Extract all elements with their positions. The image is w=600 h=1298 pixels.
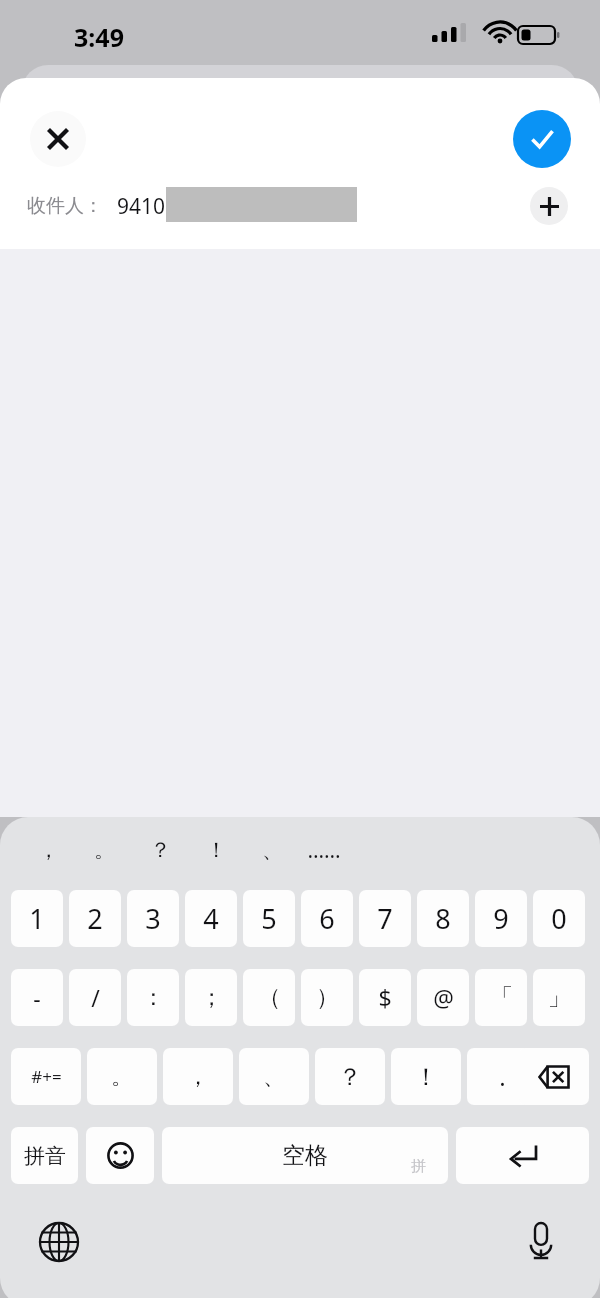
staticText: . [499,1060,506,1093]
button[interactable]: 0 [533,890,585,947]
staticText: 空格 [282,1141,328,1170]
staticText: 「 [490,983,513,1012]
button[interactable]: ！ [194,827,238,873]
staticText: 5 [261,900,277,937]
staticText: ） [316,983,339,1012]
button[interactable]: 7 [359,890,411,947]
button[interactable]: 5 [243,890,295,947]
button[interactable]: ？ [315,1048,385,1105]
staticText: 」 [548,983,571,1012]
button[interactable]: 拼音 [11,1127,78,1184]
button[interactable]: Delete [519,1048,589,1105]
staticText: 9 [493,900,509,937]
button[interactable]: ： [127,969,179,1026]
button[interactable]: $ [359,969,411,1026]
staticText: ！ [206,837,227,863]
staticText: 1 [29,900,45,937]
staticText: 。 [111,1063,133,1091]
staticText: ； [200,983,223,1012]
staticText: @ [433,982,454,1013]
button[interactable]: ， [26,827,70,873]
staticText: ： [142,983,165,1012]
button[interactable]: Enter [456,1127,589,1184]
staticText: 3 [145,900,161,937]
staticText: …… [307,836,341,865]
button[interactable]: 。 [82,827,126,873]
staticText: 。 [94,837,115,863]
staticText: ？ [150,837,171,863]
staticText: 0 [551,900,567,937]
button[interactable]: 。 [87,1048,157,1105]
staticText: 4 [203,900,219,937]
button[interactable]: Close [30,111,86,167]
button[interactable]: 空格 [162,1127,448,1184]
button[interactable]: 「 [475,969,527,1026]
staticText: ， [187,1063,209,1091]
staticText: 、 [263,1063,285,1091]
button[interactable]: ） [301,969,353,1026]
button[interactable]: 2 [69,890,121,947]
button[interactable]: 3 [127,890,179,947]
button[interactable]: / [69,969,121,1026]
staticText: 9410 [117,192,166,221]
button[interactable]: （ [243,969,295,1026]
staticText: #+= [31,1065,62,1088]
button[interactable]: ， [163,1048,233,1105]
button[interactable]: 8 [417,890,469,947]
button[interactable]: 、 [250,827,294,873]
button[interactable]: 6 [301,890,353,947]
staticText: ！ [414,1062,438,1092]
staticText: 3:49 [74,20,124,54]
button[interactable]: 9 [475,890,527,947]
staticText: ， [38,837,59,863]
button[interactable]: 、 [239,1048,309,1105]
button[interactable]: 1 [11,890,63,947]
staticText: 6 [319,900,335,937]
staticText: ？ [338,1062,362,1092]
button[interactable]: …… [302,827,346,873]
staticText: 拼 [411,1157,426,1176]
staticText: - [33,982,41,1013]
staticText: / [91,982,100,1013]
button[interactable]: Add recipient [530,187,568,225]
staticText: 、 [262,837,283,863]
button[interactable]: @ [417,969,469,1026]
button[interactable]: ？ [138,827,182,873]
staticText: 2 [87,900,103,937]
button[interactable]: Emoji [86,1127,154,1184]
button[interactable]: Change keyboard [34,1217,84,1267]
staticText: $ [378,982,392,1013]
button[interactable]: . [467,1048,537,1105]
staticText: （ [258,983,281,1012]
staticText: 7 [377,900,393,937]
button[interactable]: Confirm [513,110,571,168]
staticText: 收件人： [27,194,103,218]
staticText: 8 [435,900,451,937]
button[interactable]: 」 [533,969,585,1026]
button[interactable]: #+= [11,1048,81,1105]
staticText: 拼音 [24,1143,66,1169]
button[interactable]: ！ [391,1048,461,1105]
button[interactable]: - [11,969,63,1026]
button[interactable]: Voice input [516,1217,566,1267]
button[interactable]: 4 [185,890,237,947]
button[interactable]: ； [185,969,237,1026]
